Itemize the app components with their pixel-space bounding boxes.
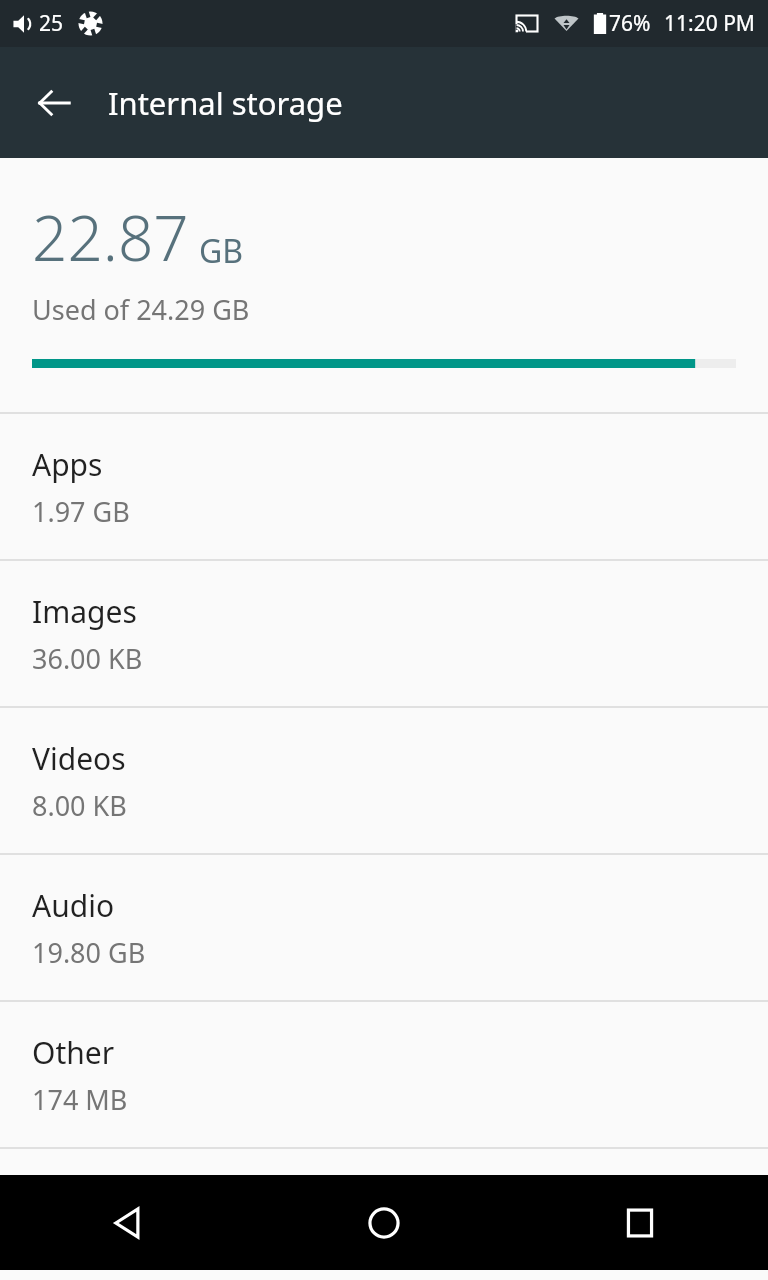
- button[interactable]: Videos: [0, 708, 768, 853]
- staticText: 25: [39, 9, 64, 38]
- button[interactable]: Recent apps: [512, 1175, 768, 1270]
- button[interactable]: Audio: [0, 855, 768, 1000]
- staticText: 174 MB: [32, 1081, 128, 1118]
- staticText: Used of 24.29 GB: [32, 291, 250, 328]
- staticText: 1.97 GB: [32, 493, 130, 530]
- button[interactable]: Navigate up: [22, 71, 86, 135]
- staticText: 36.00 KB: [32, 640, 143, 677]
- staticText: GB: [199, 229, 244, 273]
- staticText: 22.87: [32, 195, 189, 279]
- staticText: 19.80 GB: [32, 934, 146, 971]
- staticText: Internal storage: [108, 82, 343, 124]
- button[interactable]: Home: [256, 1175, 512, 1270]
- staticText: 8.00 KB: [32, 787, 127, 824]
- staticText: Apps: [32, 444, 103, 485]
- staticText: Videos: [32, 738, 126, 779]
- staticText: 76%: [609, 9, 651, 38]
- staticText: Images: [32, 591, 137, 632]
- staticText: Audio: [32, 885, 115, 926]
- button[interactable]: Back: [0, 1175, 256, 1270]
- button[interactable]: Images: [0, 561, 768, 706]
- button[interactable]: Other: [0, 1002, 768, 1147]
- staticText: 11:20 PM: [664, 9, 755, 38]
- button[interactable]: Apps: [0, 414, 768, 559]
- staticText: Other: [32, 1032, 115, 1073]
